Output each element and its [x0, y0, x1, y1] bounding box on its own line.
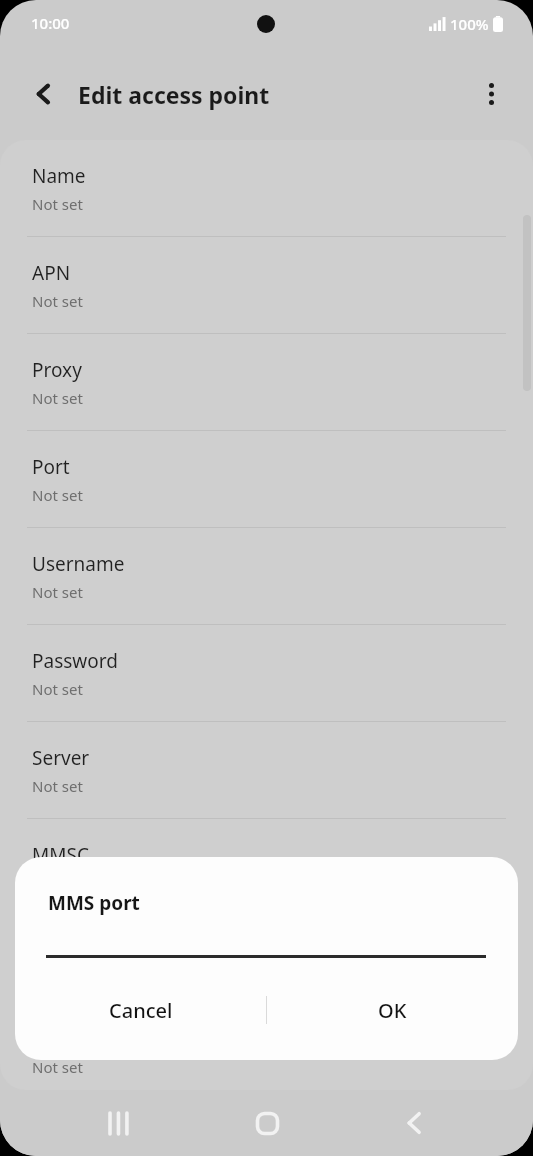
button[interactable]: Name: [0, 140, 533, 236]
staticText: Proxy: [32, 357, 82, 383]
staticText: Not set: [32, 582, 83, 602]
button[interactable]: Server: [0, 722, 533, 818]
staticText: Not set: [32, 194, 83, 214]
staticText: MMS proxy: [32, 939, 132, 965]
button[interactable]: Port: [0, 431, 533, 527]
staticText: Not set: [32, 679, 83, 699]
staticText: Edit access point: [78, 79, 270, 110]
staticText: Not set: [32, 1057, 83, 1077]
button[interactable]: Cancel: [15, 979, 266, 1041]
button[interactable]: Username: [0, 528, 533, 624]
button[interactable]: MMS proxy: [0, 916, 533, 1012]
button[interactable]: MMSC: [0, 819, 533, 915]
staticText: Not set: [32, 291, 83, 311]
staticText: Not set: [32, 485, 83, 505]
button[interactable]: Back: [18, 68, 70, 120]
staticText: Port: [32, 454, 70, 480]
staticText: MMSC: [32, 842, 89, 868]
button[interactable]: Recents: [91, 1095, 147, 1151]
button[interactable]: OK: [267, 979, 518, 1041]
staticText: APN: [32, 260, 71, 286]
staticText: Server: [32, 745, 90, 771]
staticText: Cancel: [109, 997, 173, 1024]
staticText: Password: [32, 648, 118, 674]
button[interactable]: Back: [386, 1095, 442, 1151]
staticText: OK: [378, 997, 407, 1024]
staticText: 10:00: [31, 13, 70, 33]
button[interactable]: Home: [239, 1095, 295, 1151]
staticText: Not set: [32, 776, 83, 796]
staticText: MMS port: [48, 890, 140, 916]
button[interactable]: APN: [0, 237, 533, 333]
staticText: 100%: [450, 14, 489, 34]
button[interactable]: More options: [465, 68, 517, 120]
staticText: Username: [32, 551, 125, 577]
button[interactable]: Proxy: [0, 334, 533, 430]
staticText: Not set: [32, 388, 83, 408]
button[interactable]: Password: [0, 625, 533, 721]
staticText: Name: [32, 163, 86, 189]
button[interactable]: MMS port: [0, 1013, 533, 1090]
